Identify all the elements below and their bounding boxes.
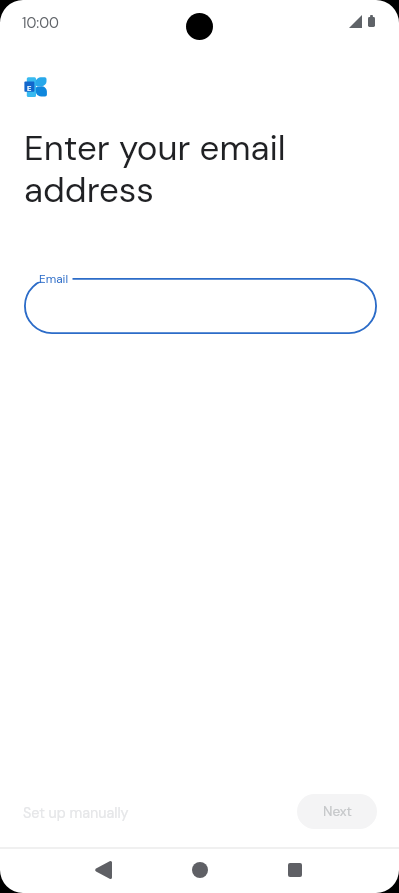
staticText: Set up manually: [23, 804, 129, 823]
staticText: E: [27, 83, 32, 93]
staticText: Email: [39, 271, 69, 286]
button[interactable]: Next: [297, 794, 377, 829]
button[interactable]: Recent apps: [271, 847, 319, 893]
staticText: Next: [323, 803, 352, 821]
button[interactable]: Set up manually: [11, 796, 141, 831]
button[interactable]: Home: [176, 847, 224, 893]
staticText: 10:00: [22, 14, 59, 33]
button[interactable]: Email input field: [24, 278, 377, 334]
staticText: Enter your email address: [24, 125, 286, 213]
button[interactable]: Back: [79, 847, 127, 893]
